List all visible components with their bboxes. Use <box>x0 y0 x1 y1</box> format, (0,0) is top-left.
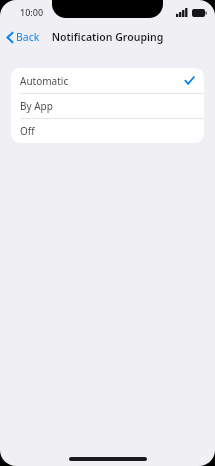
button[interactable]: Off <box>11 118 204 143</box>
button[interactable]: By App <box>11 93 204 118</box>
button[interactable]: Automatic <box>11 68 204 93</box>
staticText: By App <box>20 99 53 113</box>
staticText: Back <box>16 30 40 44</box>
staticText: Automatic <box>20 74 69 88</box>
other: Selected <box>184 75 195 86</box>
staticText: Notification Grouping <box>0 30 215 44</box>
staticText: Off <box>20 124 35 138</box>
button[interactable]: Back <box>0 26 48 48</box>
staticText: 10:00 <box>20 6 44 18</box>
